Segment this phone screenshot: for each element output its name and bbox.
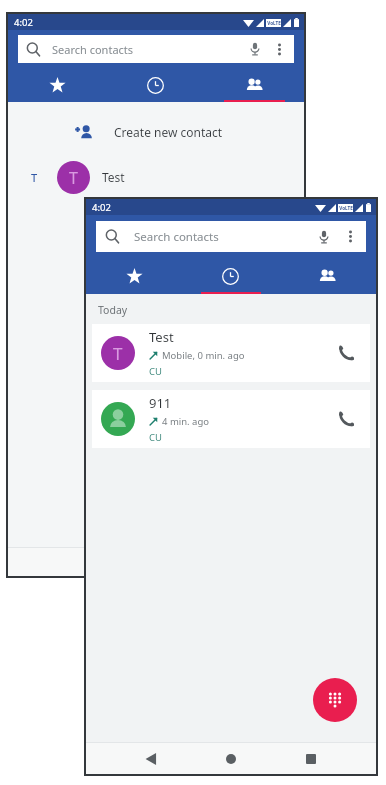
staticText: Mobile, 0 min. ago — [162, 349, 245, 362]
staticText: Today — [98, 303, 128, 317]
staticText: 4 min. ago — [162, 415, 210, 428]
staticText: Test — [102, 169, 125, 185]
staticText: 4:02 — [14, 16, 33, 29]
button[interactable]: Favourites — [86, 258, 182, 294]
staticText: T — [31, 170, 38, 185]
button[interactable]: 911 — [92, 390, 370, 448]
staticText: Create new contact — [114, 124, 223, 140]
button[interactable]: Contacts — [279, 258, 376, 294]
staticText: CU — [149, 365, 162, 378]
button[interactable]: T — [8, 157, 304, 197]
staticText: 4:02 — [92, 201, 111, 214]
button[interactable]: Recents — [182, 258, 279, 294]
button[interactable]: Search contacts — [96, 221, 366, 252]
button[interactable]: Back — [136, 744, 166, 774]
staticText: Search contacts — [134, 229, 219, 245]
button[interactable]: Recents — [106, 68, 205, 102]
staticText: Search contacts — [52, 42, 134, 57]
staticText: T — [69, 167, 78, 189]
button[interactable]: Call Test — [333, 339, 361, 367]
button[interactable]: Call 911 — [333, 405, 361, 433]
staticText: CU — [149, 431, 162, 444]
button[interactable]: Recent apps — [296, 744, 326, 774]
button[interactable]: Contacts — [205, 68, 304, 102]
staticText: T — [113, 342, 123, 365]
button[interactable]: Favourites — [8, 68, 106, 102]
button[interactable]: Search contacts — [18, 35, 294, 63]
button[interactable]: T — [92, 324, 370, 382]
staticText: VoLTE — [267, 20, 281, 26]
button[interactable]: Create new contact — [8, 115, 304, 149]
staticText: Test — [149, 328, 174, 346]
button[interactable]: Dialpad — [313, 678, 357, 722]
button[interactable]: Home — [216, 744, 246, 774]
staticText: 911 — [149, 394, 172, 412]
staticText: VoLTE — [339, 205, 353, 211]
